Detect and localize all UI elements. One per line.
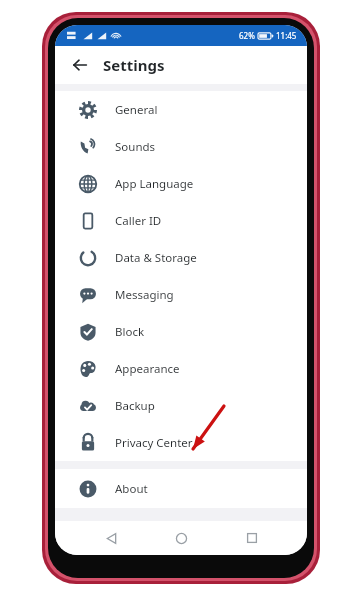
button[interactable]: Back	[96, 523, 126, 553]
staticText: General	[115, 102, 158, 118]
staticText: Messaging	[115, 287, 174, 303]
button[interactable]: Appearance	[55, 350, 307, 387]
staticText: Sounds	[115, 139, 156, 155]
staticText: Settings	[103, 55, 165, 75]
button[interactable]: General	[55, 91, 307, 128]
button[interactable]: Messaging	[55, 276, 307, 313]
button[interactable]: Home	[166, 523, 196, 553]
button[interactable]: Backup	[55, 387, 307, 424]
button[interactable]: Data & Storage	[55, 239, 307, 276]
staticText: Data & Storage	[115, 250, 197, 266]
button[interactable]: Privacy Center	[55, 424, 307, 461]
button[interactable]: App Language	[55, 165, 307, 202]
button[interactable]: Back	[67, 52, 93, 78]
staticText: About	[115, 481, 148, 497]
staticText: Caller ID	[115, 213, 162, 229]
staticText: Backup	[115, 398, 155, 414]
staticText: 62%	[239, 30, 255, 41]
button[interactable]: Block	[55, 313, 307, 350]
button[interactable]: Caller ID	[55, 202, 307, 239]
staticText: Privacy Center	[115, 435, 193, 451]
button[interactable]: Recent apps	[237, 523, 267, 553]
staticText: 11:45	[276, 30, 297, 41]
staticText: App Language	[115, 176, 194, 192]
button[interactable]: Sounds	[55, 128, 307, 165]
staticText: Appearance	[115, 361, 180, 377]
button[interactable]: About	[55, 470, 307, 507]
staticText: Block	[115, 324, 145, 340]
